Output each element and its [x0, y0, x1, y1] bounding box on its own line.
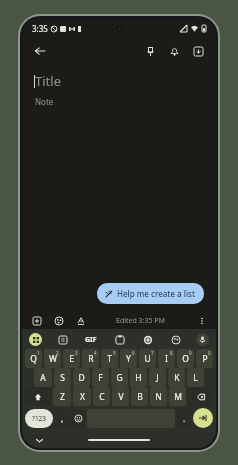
button[interactable]: GIF	[83, 332, 98, 347]
staticText: B	[137, 391, 143, 403]
button[interactable]: V	[112, 387, 129, 406]
button[interactable]: Archive	[188, 41, 208, 61]
staticText: 3:35	[32, 23, 48, 34]
button[interactable]: More options	[194, 313, 209, 328]
staticText: R	[88, 353, 94, 365]
button[interactable]: ,	[55, 409, 69, 428]
button[interactable]: Y	[120, 349, 137, 368]
button[interactable]: .	[177, 409, 191, 428]
staticText: J	[156, 372, 159, 384]
button[interactable]: Backspace	[188, 387, 213, 406]
staticText: 4	[94, 350, 97, 356]
staticText: G	[116, 372, 123, 384]
staticText: 7	[151, 350, 154, 356]
staticText: ,	[61, 413, 64, 424]
button[interactable]: Formatting	[73, 313, 88, 328]
button[interactable]: K	[168, 368, 185, 387]
button[interactable]: G	[111, 368, 128, 387]
button[interactable]: Hide keyboard	[34, 435, 44, 445]
staticText: H	[135, 372, 142, 384]
staticText: L	[193, 372, 198, 384]
button[interactable]: Theme	[168, 332, 183, 347]
staticText: U	[144, 353, 151, 365]
staticText: X	[80, 391, 85, 403]
staticText: O	[182, 353, 189, 365]
button[interactable]: F	[92, 368, 109, 387]
staticText: K	[174, 372, 180, 384]
staticText: Help me create a list	[117, 288, 196, 299]
button[interactable]: Emoji	[71, 409, 85, 428]
button[interactable]: O	[177, 349, 194, 368]
button[interactable]: Back	[30, 41, 50, 61]
staticText: A	[40, 372, 46, 384]
button[interactable]: I	[158, 349, 175, 368]
staticText: Y	[126, 353, 131, 365]
button[interactable]: W	[44, 349, 61, 368]
staticText: W	[49, 353, 57, 365]
button[interactable]: P	[196, 349, 213, 368]
button[interactable]: Voice input	[196, 333, 209, 346]
staticText: E	[69, 353, 74, 365]
button[interactable]: R	[82, 349, 99, 368]
staticText: 9	[189, 350, 192, 356]
button[interactable]: S	[54, 368, 71, 387]
staticText: Q	[30, 353, 37, 365]
staticText: 1	[37, 350, 40, 356]
staticText: D	[78, 372, 85, 384]
button[interactable]: Enter	[193, 408, 213, 428]
button[interactable]: H	[130, 368, 147, 387]
button[interactable]: Stickers	[55, 332, 70, 347]
staticText: V	[118, 391, 124, 403]
button[interactable]: E	[63, 349, 80, 368]
button[interactable]: Z	[53, 387, 71, 406]
button[interactable]: Clipboard	[112, 332, 127, 347]
staticText: T	[107, 353, 112, 365]
button[interactable]: Add	[29, 313, 44, 328]
button[interactable]: T	[101, 349, 118, 368]
button[interactable]: Shift	[25, 387, 51, 406]
staticText: C	[99, 391, 105, 403]
staticText: Title	[35, 72, 61, 90]
staticText: M	[174, 391, 182, 403]
staticText: Note	[35, 96, 54, 107]
staticText: 3	[75, 350, 78, 356]
staticText: N	[155, 391, 162, 403]
button[interactable]: Background colour	[51, 313, 66, 328]
staticText: P	[202, 353, 208, 365]
staticText: 0	[208, 350, 211, 356]
button[interactable]: ?123	[25, 409, 53, 428]
button[interactable]: Reminder	[164, 41, 184, 61]
button[interactable]: Q	[25, 349, 42, 368]
staticText: 8	[170, 350, 173, 356]
staticText: GIF	[85, 335, 97, 345]
button[interactable]: J	[149, 368, 166, 387]
button[interactable]: Emoji	[29, 333, 42, 346]
button[interactable]: C	[93, 387, 110, 406]
button[interactable]: M	[169, 387, 186, 406]
button[interactable]: L	[187, 368, 204, 387]
staticText: F	[98, 372, 103, 384]
staticText: 2	[56, 350, 59, 356]
button[interactable]: B	[131, 387, 148, 406]
button[interactable]: Help me create a list	[97, 283, 204, 304]
staticText: 5	[113, 350, 116, 356]
button[interactable]: A	[34, 368, 52, 387]
button[interactable]: Pin	[140, 41, 160, 61]
button[interactable]: Settings	[140, 332, 155, 347]
button[interactable]: U	[139, 349, 156, 368]
staticText: .	[183, 413, 186, 424]
staticText: Z	[60, 391, 65, 403]
button[interactable]: D	[73, 368, 90, 387]
button[interactable]: X	[73, 387, 91, 406]
button[interactable]: N	[150, 387, 167, 406]
staticText: ?123	[32, 414, 47, 423]
staticText: 6	[132, 350, 135, 356]
staticText: Edited 3:35 PM	[116, 316, 165, 326]
staticText: S	[60, 372, 65, 384]
staticText: I	[165, 353, 168, 365]
